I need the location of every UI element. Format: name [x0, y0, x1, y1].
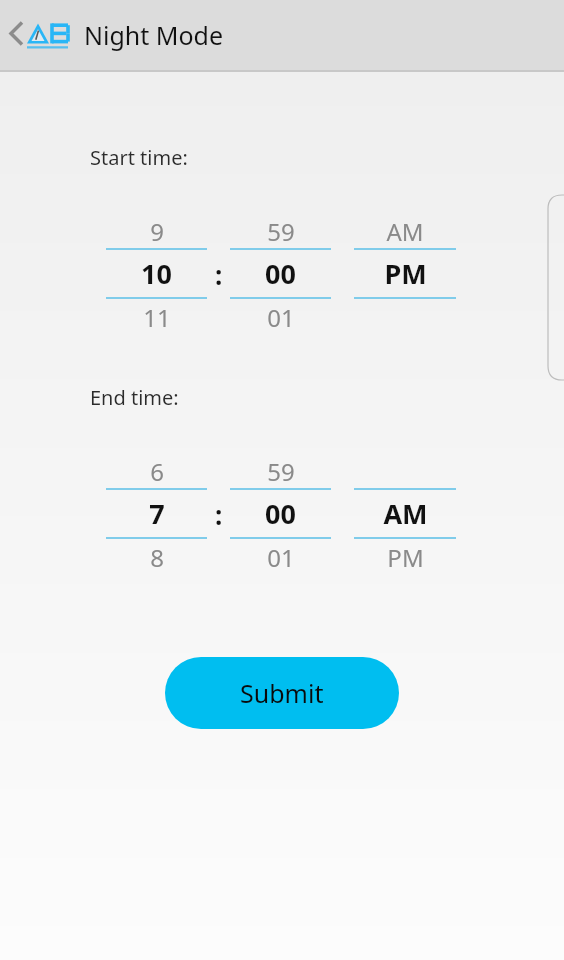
staticText: 01 [267, 301, 295, 334]
button[interactable]: Back [6, 9, 78, 61]
staticText: AM [383, 495, 428, 532]
staticText: Submit [240, 676, 324, 710]
staticText: Night Mode [84, 18, 224, 52]
staticText: 59 [267, 215, 295, 245]
button[interactable]: 59 [230, 215, 331, 335]
button[interactable]: Submit [165, 657, 399, 729]
staticText: : [215, 257, 223, 292]
button[interactable]: AM [354, 215, 456, 335]
staticText: 11 [143, 301, 171, 334]
button[interactable]: 59 [230, 455, 331, 575]
staticText: 7 [149, 495, 165, 532]
staticText: PM [387, 541, 424, 574]
button[interactable]: 6 [106, 455, 207, 575]
staticText: Start time: [90, 144, 188, 171]
staticText: 00 [265, 495, 296, 532]
staticText: AM [386, 215, 424, 245]
staticText: 6 [150, 455, 164, 485]
staticText: 01 [267, 541, 295, 574]
staticText: 10 [141, 255, 172, 292]
staticText: 59 [267, 455, 295, 485]
staticText: End time: [90, 384, 179, 411]
button[interactable]: 9 [106, 215, 207, 335]
staticText: PM [384, 255, 427, 292]
staticText: 8 [150, 541, 164, 574]
staticText: : [215, 497, 223, 532]
staticText: 9 [150, 215, 164, 245]
staticText: 00 [265, 255, 296, 292]
button[interactable]: AM [354, 455, 456, 575]
